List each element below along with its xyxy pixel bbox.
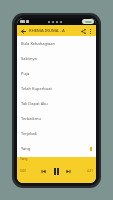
staticText: 4:21 [87,169,93,173]
button[interactable]: Share [79,27,87,35]
staticText: 0:00 [20,169,26,173]
button[interactable]: Yang [17,141,96,156]
staticText: RHEMA IRUMA - A [29,28,79,34]
staticText: Terjebak [21,131,92,136]
staticText: Sakitnya [21,56,92,61]
button[interactable]: Pause [50,165,62,177]
button[interactable]: Sakitnya [17,51,96,66]
staticText: Terbaikmu [21,116,92,121]
button[interactable]: Puja [17,66,96,81]
staticText: Telah Kuperbuat [21,86,92,91]
button[interactable]: More options [87,27,94,35]
staticText: Bula Kebahagiaan [21,41,92,46]
button[interactable]: Back [19,27,27,35]
button[interactable]: Next [64,167,73,176]
button[interactable]: Telah Kuperbuat [17,81,96,96]
button[interactable]: Bula Kebahagiaan [17,36,96,51]
staticText: Puja [21,71,92,76]
staticText: Tak Dapat Aku [21,101,92,106]
staticText: Yang [20,157,28,161]
button[interactable]: Terbaikmu [17,111,96,126]
button[interactable]: Tak Dapat Aku [17,96,96,111]
button[interactable]: Previous [39,167,48,176]
button[interactable]: Terjebak [17,126,96,141]
staticText: Yang [21,146,90,151]
